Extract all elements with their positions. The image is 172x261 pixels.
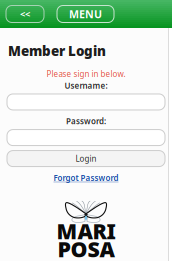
staticText: << — [20, 8, 30, 20]
staticText: Please sign in below. — [46, 69, 125, 79]
button[interactable]: MENU — [57, 5, 114, 22]
staticText: Login — [75, 153, 96, 164]
staticText: Username: — [64, 80, 107, 91]
staticText: Password: — [66, 116, 106, 127]
button[interactable]: Login — [0, 151, 172, 167]
staticText: Forgot Password — [53, 173, 118, 183]
staticText: POSA — [57, 235, 114, 261]
staticText: Member Login — [8, 42, 106, 60]
button[interactable]: Forgot Password — [49, 171, 122, 185]
button[interactable]: Back — [6, 5, 44, 22]
staticText: MENU — [69, 7, 102, 21]
staticText: MARI — [56, 217, 115, 245]
